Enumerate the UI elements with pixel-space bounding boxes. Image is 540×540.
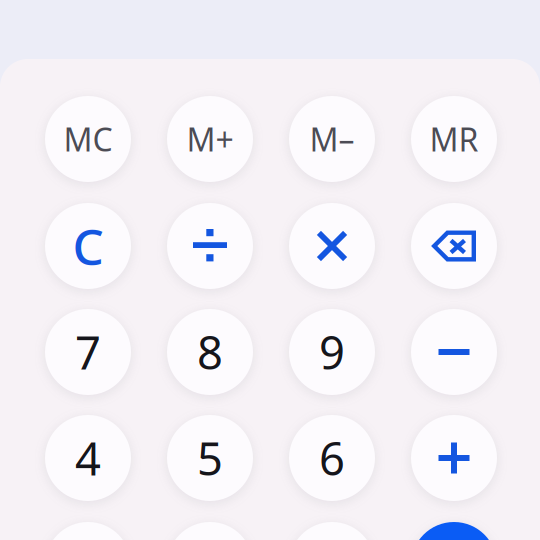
button[interactable]: Minus bbox=[411, 309, 497, 395]
button[interactable]: Backspace bbox=[411, 203, 497, 289]
button[interactable]: 9 bbox=[289, 309, 375, 395]
staticText: M– bbox=[309, 118, 354, 160]
staticText: MR bbox=[429, 118, 478, 160]
button[interactable]: Memory recall bbox=[411, 96, 497, 182]
staticText: 4 bbox=[75, 428, 101, 488]
staticText: 5 bbox=[197, 428, 223, 488]
button[interactable]: 3 bbox=[289, 522, 375, 540]
staticText: 8 bbox=[197, 322, 223, 382]
button[interactable]: Plus bbox=[411, 415, 497, 501]
button[interactable]: 7 bbox=[45, 309, 131, 395]
button[interactable]: 4 bbox=[45, 415, 131, 501]
button[interactable]: Memory add bbox=[167, 96, 253, 182]
button[interactable]: Memory clear bbox=[45, 96, 131, 182]
staticText: 6 bbox=[319, 428, 345, 488]
staticText: C bbox=[72, 213, 103, 279]
button[interactable]: Clear bbox=[45, 203, 131, 289]
button[interactable]: Equals bbox=[411, 522, 497, 540]
staticText: M+ bbox=[186, 118, 233, 160]
staticText: MC bbox=[63, 118, 112, 160]
button[interactable]: 8 bbox=[167, 309, 253, 395]
button[interactable]: Multiply bbox=[289, 203, 375, 289]
button[interactable]: 1 bbox=[45, 522, 131, 540]
button[interactable]: Memory subtract bbox=[289, 96, 375, 182]
button[interactable]: 2 bbox=[167, 522, 253, 540]
button[interactable]: 5 bbox=[167, 415, 253, 501]
staticText: 9 bbox=[319, 322, 345, 382]
button[interactable]: 6 bbox=[289, 415, 375, 501]
staticText: 7 bbox=[75, 322, 101, 382]
button[interactable]: Divide bbox=[167, 203, 253, 289]
